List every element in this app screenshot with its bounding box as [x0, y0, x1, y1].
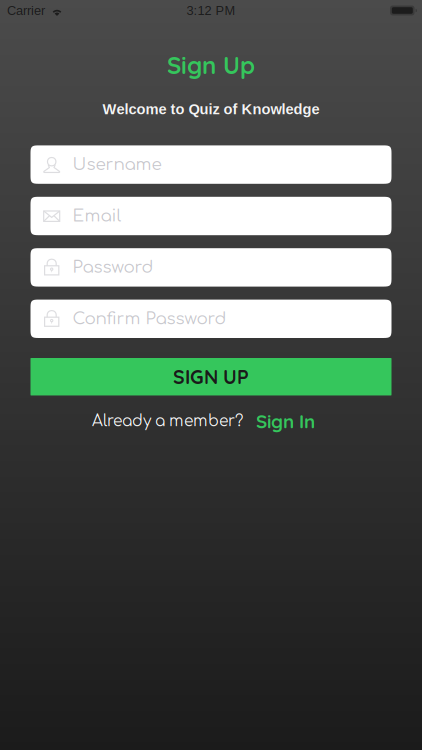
staticText: Confirm Password: [72, 309, 226, 328]
button[interactable]: SIGN UP: [30, 358, 391, 395]
staticText: Email: [72, 207, 121, 225]
staticText: Already a member?: [92, 413, 243, 430]
staticText: Sign In: [256, 409, 315, 433]
button[interactable]: Email: [30, 197, 391, 235]
button[interactable]: Sign In: [256, 409, 315, 433]
staticText: Password: [72, 258, 153, 277]
staticText: Username: [72, 155, 161, 174]
staticText: SIGN UP: [173, 365, 249, 389]
staticText: Sign Up: [167, 50, 255, 80]
staticText: Carrier: [7, 3, 45, 18]
staticText: Welcome to Quiz of Knowledge: [102, 101, 319, 117]
staticText: 3:12 PM: [186, 3, 235, 18]
button[interactable]: Username: [30, 145, 391, 184]
button[interactable]: Confirm Password: [30, 300, 391, 338]
button[interactable]: Password: [30, 248, 391, 287]
